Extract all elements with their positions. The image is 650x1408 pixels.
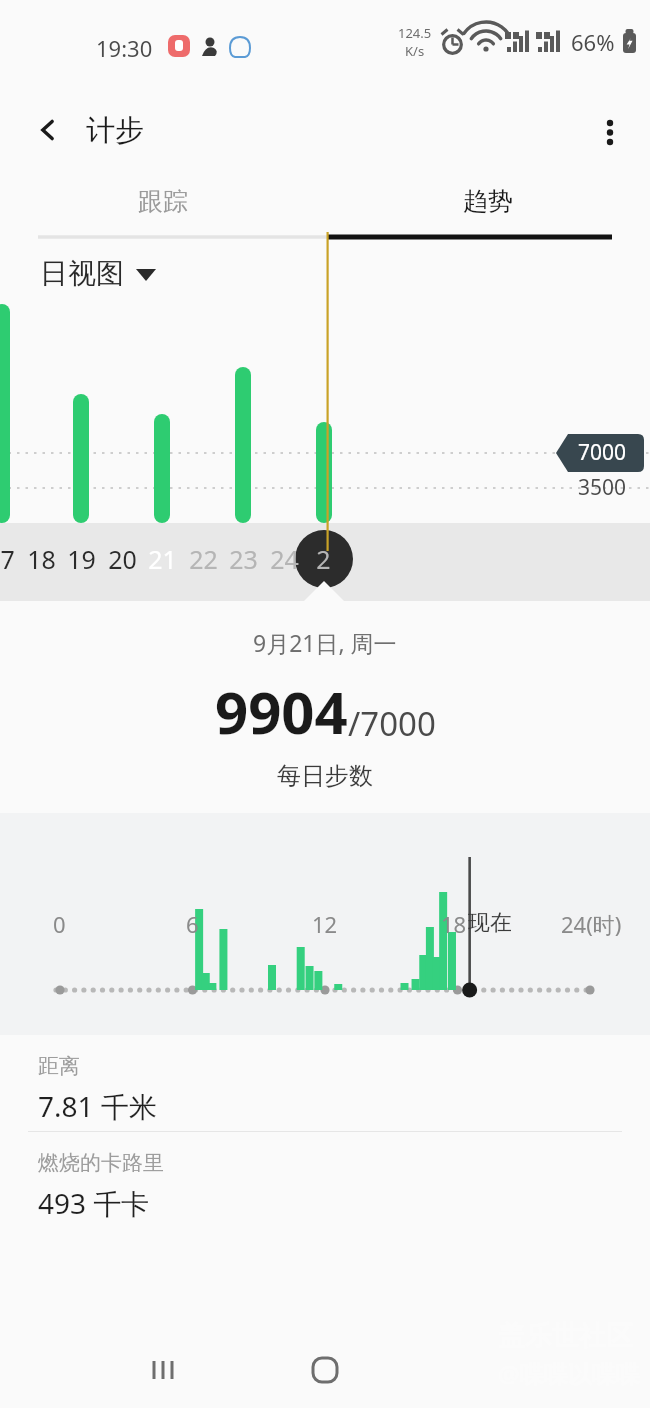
staticText: 距离 <box>38 1053 80 1079</box>
staticText: 6 <box>186 909 199 939</box>
staticText: 18 <box>27 542 56 576</box>
staticText: 9月21日, 周一 <box>253 627 397 658</box>
button[interactable]: 2 <box>301 537 345 581</box>
staticText: 9904 <box>215 672 348 751</box>
button[interactable]: Back <box>24 106 72 154</box>
staticText: 24(时) <box>561 909 622 939</box>
button[interactable]: 19 <box>59 537 103 581</box>
staticText: 17 <box>0 542 15 576</box>
staticText: 日视图 <box>40 256 124 291</box>
staticText: 19 <box>67 542 96 576</box>
staticText: 493 千卡 <box>38 1184 150 1222</box>
staticText: 20 <box>108 542 137 576</box>
staticText: 18 <box>441 909 467 939</box>
staticText: 12 <box>312 909 338 939</box>
button[interactable]: 跟踪 <box>0 172 325 240</box>
button[interactable]: 24 <box>262 537 306 581</box>
staticText: 19:30 <box>96 33 153 63</box>
staticText: 现在 <box>468 909 512 937</box>
staticText: 计步 <box>86 112 144 149</box>
staticText: 2 <box>316 542 331 576</box>
staticText: 燃烧的卡路里 <box>38 1150 164 1176</box>
button[interactable]: 日视图 <box>40 256 156 291</box>
staticText: /7000 <box>348 701 436 746</box>
staticText: 7000 <box>578 438 627 467</box>
staticText: 趋势 <box>463 186 513 217</box>
staticText: 0 <box>53 909 66 939</box>
button[interactable]: Home <box>292 1337 358 1403</box>
staticText: 24 <box>270 542 299 576</box>
staticText: 22 <box>189 542 218 576</box>
staticText: 124.5 <box>398 24 432 42</box>
button[interactable]: 23 <box>221 537 265 581</box>
button[interactable]: 21 <box>140 537 184 581</box>
staticText: 3500 <box>578 473 627 502</box>
button[interactable]: 距离 <box>0 1035 650 1131</box>
button[interactable]: 17 <box>0 537 22 581</box>
staticText: 23 <box>229 542 258 576</box>
staticText: 7.81 千米 <box>38 1087 157 1125</box>
button[interactable]: 燃烧的卡路里 <box>0 1132 650 1228</box>
staticText: 21 <box>148 542 177 576</box>
button[interactable]: 20 <box>100 537 144 581</box>
staticText: 跟踪 <box>138 186 188 217</box>
button[interactable]: Recent apps <box>130 1337 196 1403</box>
staticText: 每日步数 <box>277 761 373 791</box>
button[interactable]: 趋势 <box>325 172 650 240</box>
staticText: 66% <box>571 27 615 57</box>
button[interactable]: 22 <box>181 537 225 581</box>
button[interactable]: More options <box>586 106 634 154</box>
staticText: K/s <box>405 42 425 60</box>
button[interactable]: 18 <box>19 537 63 581</box>
